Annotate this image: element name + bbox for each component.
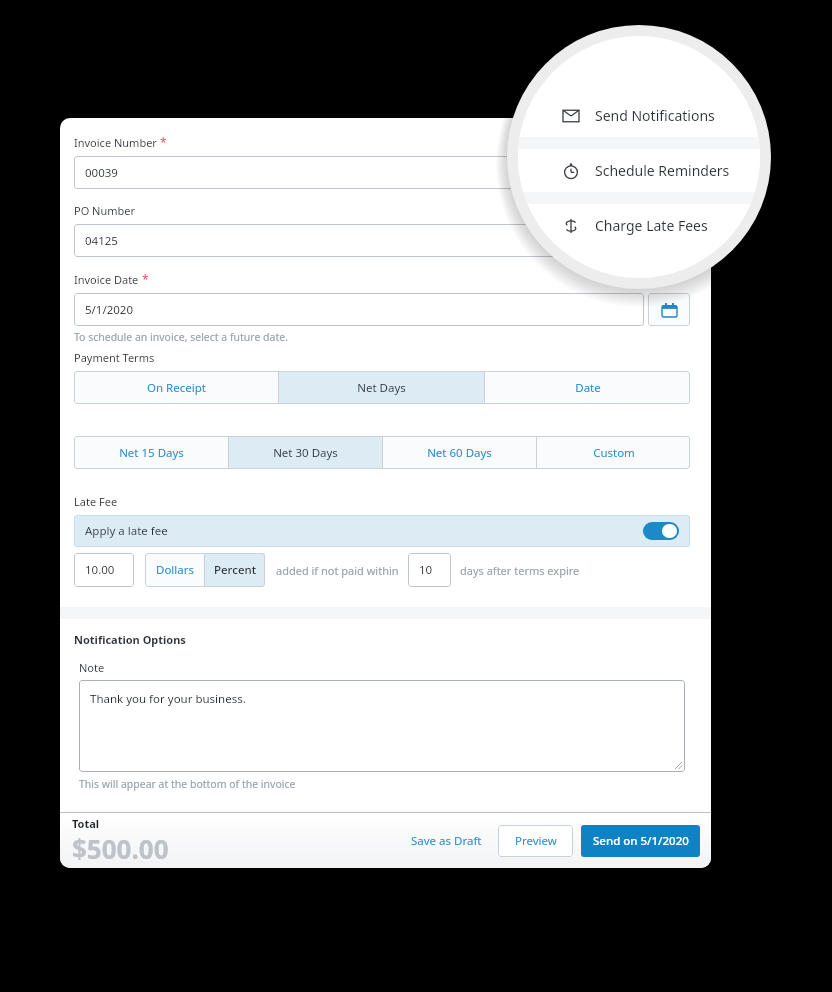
staticText: $500.00: [72, 831, 169, 866]
staticText: Note: [79, 660, 105, 675]
staticText: *: [139, 271, 149, 287]
staticText: Schedule Reminders: [595, 161, 730, 180]
button[interactable]: 5/1/2020: [74, 293, 644, 326]
button[interactable]: 10.00: [74, 553, 134, 587]
staticText: Send on 5/1/2020: [593, 833, 689, 849]
staticText: 10: [419, 562, 433, 578]
button[interactable]: On Receipt: [74, 371, 278, 404]
staticText: Total: [72, 816, 100, 831]
staticText: 5/1/2020: [85, 302, 134, 318]
staticText: 00039: [85, 165, 118, 181]
button[interactable]: Send on 5/1/2020: [581, 825, 700, 857]
staticText: Net 15 Days: [119, 445, 184, 461]
staticText: Net 60 Days: [427, 445, 492, 461]
staticText: Send Notifications: [595, 106, 715, 125]
staticText: 10.00: [85, 562, 115, 578]
button[interactable]: Date: [485, 371, 690, 404]
staticText: Date: [575, 380, 601, 396]
button[interactable]: Custom: [537, 436, 690, 469]
staticText: Save as Draft: [411, 833, 482, 849]
staticText: Net 30 Days: [273, 445, 338, 461]
staticText: added if not paid within: [276, 563, 399, 578]
button[interactable]: Net Days: [279, 371, 484, 404]
button[interactable]: Net 60 Days: [383, 436, 536, 469]
staticText: Preview: [515, 833, 557, 849]
staticText: Net Days: [357, 380, 406, 396]
staticText: Thank you for your business.: [90, 691, 246, 707]
staticText: Charge Late Fees: [595, 216, 708, 235]
staticText: Invoice Date: [74, 272, 139, 287]
staticText: days after terms expire: [460, 563, 580, 578]
staticText: 04125: [85, 233, 118, 249]
staticText: *: [157, 134, 167, 150]
button[interactable]: Thank you for your business.: [79, 680, 685, 772]
button[interactable]: 04125: [74, 224, 690, 257]
button[interactable]: Preview: [498, 825, 573, 857]
button[interactable]: Dollars: [145, 553, 204, 587]
staticText: Notification Options: [74, 632, 186, 647]
button[interactable]: Schedule Reminders: [518, 149, 760, 192]
staticText: This will appear at the bottom of the in…: [79, 777, 296, 791]
button[interactable]: Send Notifications: [518, 94, 760, 137]
button[interactable]: Charge Late Fees: [518, 204, 760, 247]
button[interactable]: Net 15 Days: [74, 436, 228, 469]
staticText: Payment Terms: [74, 350, 155, 365]
button[interactable]: Save as Draft: [403, 827, 490, 855]
staticText: On Receipt: [147, 380, 206, 396]
staticText: Custom: [593, 445, 635, 461]
button[interactable]: Percent: [205, 553, 265, 587]
button[interactable]: Pick date: [648, 293, 690, 326]
button[interactable]: 10: [408, 553, 451, 587]
button[interactable]: Apply a late fee: [74, 515, 690, 547]
staticText: Late Fee: [74, 494, 118, 509]
staticText: To schedule an invoice, select a future …: [74, 330, 288, 344]
button[interactable]: Net 30 Days: [229, 436, 382, 469]
staticText: Dollars: [156, 562, 194, 578]
button[interactable]: 00039: [74, 156, 690, 189]
staticText: Invoice Number: [74, 135, 157, 150]
staticText: PO Number: [74, 203, 136, 218]
staticText: Apply a late fee: [85, 523, 168, 539]
staticText: Percent: [214, 562, 257, 578]
